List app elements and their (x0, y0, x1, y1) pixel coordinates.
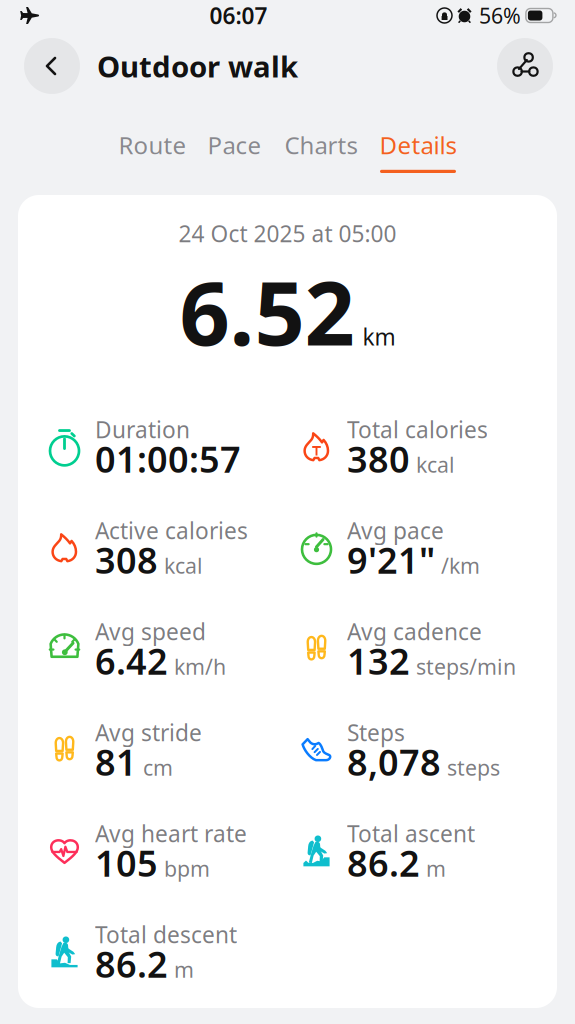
staticText: 8,078 (347, 738, 441, 786)
staticText: Avg speed (95, 616, 206, 646)
staticText: /km (441, 551, 480, 580)
button[interactable]: Back (24, 38, 80, 94)
button[interactable]: Pace (196, 101, 272, 173)
staticText: Avg heart rate (95, 818, 247, 848)
staticText: steps/min (416, 652, 516, 681)
staticText: Active calories (95, 515, 248, 545)
staticText: 81 (95, 738, 137, 786)
staticText: 6.52 (179, 253, 354, 370)
staticText: Outdoor walk (97, 46, 298, 85)
staticText: 01:00:57 (95, 435, 241, 483)
staticText: bpm (164, 854, 210, 883)
staticText: Avg stride (95, 717, 202, 747)
staticText: km/h (174, 652, 226, 681)
staticText: 380 (347, 435, 410, 483)
staticText: kcal (164, 551, 203, 580)
staticText: Details (379, 129, 456, 161)
staticText: Avg cadence (347, 616, 482, 646)
staticText: Total calories (347, 414, 488, 444)
staticText: Avg pace (347, 515, 444, 545)
staticText: Charts (284, 129, 357, 161)
staticText: 86.2 (347, 839, 420, 887)
staticText: 9'21" (347, 536, 435, 584)
staticText: kcal (416, 450, 455, 479)
staticText: 86.2 (95, 940, 168, 988)
staticText: cm (143, 753, 173, 782)
staticText: Total descent (95, 919, 237, 949)
staticText: m (426, 854, 446, 883)
button[interactable]: Share (497, 38, 553, 94)
staticText: m (174, 955, 194, 984)
staticText: 105 (95, 839, 158, 887)
staticText: 56% (479, 1, 521, 30)
staticText: 132 (347, 637, 410, 685)
staticText: Route (118, 129, 186, 161)
staticText: 6.42 (95, 637, 168, 685)
staticText: 308 (95, 536, 158, 584)
button[interactable]: Charts (272, 101, 369, 173)
staticText: Steps (347, 717, 405, 747)
staticText: 06:07 (209, 0, 267, 30)
staticText: Duration (95, 414, 190, 444)
staticText: steps (447, 753, 500, 782)
staticText: Pace (207, 129, 261, 161)
staticText: 24 Oct 2025 at 05:00 (178, 218, 396, 248)
button[interactable]: Details (369, 101, 466, 173)
staticText: km (362, 322, 395, 352)
staticText: Total ascent (347, 818, 475, 848)
button[interactable]: Route (108, 101, 196, 173)
